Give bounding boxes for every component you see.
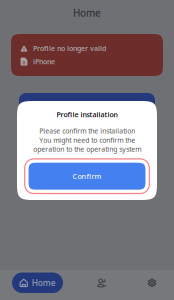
button[interactable]: Contacts [89, 273, 113, 293]
staticText: Home [32, 277, 56, 288]
button[interactable]: Settings [140, 273, 164, 293]
staticText: Home [73, 6, 101, 19]
button[interactable] [19, 93, 155, 119]
staticText: Profile installation [56, 110, 117, 119]
staticText: Profile no longer valid [33, 44, 106, 53]
staticText: Please confirm the installation You migh… [33, 126, 141, 154]
button[interactable]: Confirm [25, 159, 149, 193]
staticText: iPhone [33, 57, 55, 66]
staticText: Confirm [72, 171, 101, 181]
button[interactable]: Home [12, 272, 63, 293]
